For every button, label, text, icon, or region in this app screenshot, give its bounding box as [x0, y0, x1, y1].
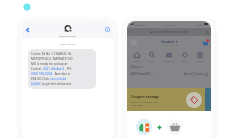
button[interactable]: Coupon savings [127, 88, 205, 111]
staticText: Coupon savings [131, 94, 160, 99]
staticText: . Amt due is [53, 72, 71, 76]
staticText: essentials [131, 103, 143, 106]
staticText: Your list [196, 60, 204, 63]
staticText: 4334 Churchill ... [130, 72, 153, 76]
button[interactable]: Account [130, 39, 137, 46]
staticText: to get this delivered. [41, 82, 72, 86]
button[interactable]: 4334 Churchill ... [130, 72, 157, 76]
staticText: 1:56 PM [165, 23, 175, 26]
staticText: Closing at 10 PM [160, 44, 178, 47]
button[interactable]: Home [133, 50, 141, 63]
staticText: (555) 555-0244 [31, 72, 53, 76]
staticText: $58.60. Click [31, 77, 50, 81]
button[interactable]: Cart [202, 39, 209, 46]
staticText: cvs.co/rx2a [50, 77, 67, 81]
staticText: ▾ [155, 73, 157, 76]
staticText: Deals [182, 60, 188, 63]
staticText: Carlos: Rx No 1 CHANGE: Rx [31, 52, 72, 56]
staticText: (555) 555-0000 [59, 34, 77, 37]
staticText: Arrive 2 hours [184, 72, 204, 76]
staticText: Home [134, 60, 140, 63]
button[interactable]: Search [147, 50, 156, 63]
button[interactable]: Info [101, 21, 113, 38]
staticText: Canton ▾ [161, 39, 178, 44]
staticText: cvs.com/shop/store-locator [154, 30, 188, 34]
button[interactable]: Treatments [162, 50, 176, 63]
staticText: Up to 40% off everyday [131, 100, 159, 103]
button[interactable]: Deals [181, 50, 189, 63]
staticText: bQdkX [31, 82, 41, 86]
staticText: 100% [196, 23, 203, 26]
staticText: Canton [31, 67, 43, 71]
staticText: Search [148, 60, 155, 63]
staticText: Delivery to [130, 65, 144, 69]
staticText: 4321 4th Ave S [43, 67, 65, 71]
button[interactable]: Back [22, 21, 34, 38]
staticText: Today 1:56 PM [22, 42, 113, 45]
staticText: METOPROLOL TARTRATE 500 [31, 57, 73, 61]
button[interactable]: cvs.com/shop/store-locator [127, 28, 211, 36]
button[interactable]: Carlos: Rx No 1 CHANGE: Rx [28, 49, 96, 89]
staticText: Carrier ᶜ [135, 23, 145, 26]
button[interactable]: Your list [195, 50, 205, 63]
staticText: MG is ready for pickup at [31, 62, 68, 66]
staticText: Treatments [163, 60, 175, 63]
staticText: . PH: [65, 67, 72, 71]
